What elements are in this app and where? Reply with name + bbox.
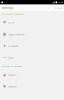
- staticText: Bluetooth: [8, 44, 18, 48]
- button[interactable]: Display: [54, 6, 64, 9]
- button[interactable]: More: [0, 52, 64, 63]
- staticText: Wireless & networks: [2, 12, 24, 15]
- staticText: 12:30: [58, 1, 63, 3]
- staticText: More: [8, 56, 13, 59]
- button[interactable]: Wi-Fi: [0, 17, 64, 28]
- staticText: Settings: [2, 6, 13, 10]
- button[interactable]: Bluetooth: [0, 40, 64, 52]
- button[interactable]: Security: [0, 69, 64, 81]
- staticText: Personal & accounts: [2, 65, 22, 68]
- staticText: Location: [8, 85, 16, 88]
- button[interactable]: Location: [0, 81, 64, 92]
- staticText: Security: [8, 73, 16, 76]
- staticText: Wi-Fi: [8, 21, 14, 24]
- button[interactable]: Mobile network: [0, 28, 64, 40]
- staticText: Mobile network: [8, 33, 24, 36]
- staticText: Display: [54, 6, 62, 9]
